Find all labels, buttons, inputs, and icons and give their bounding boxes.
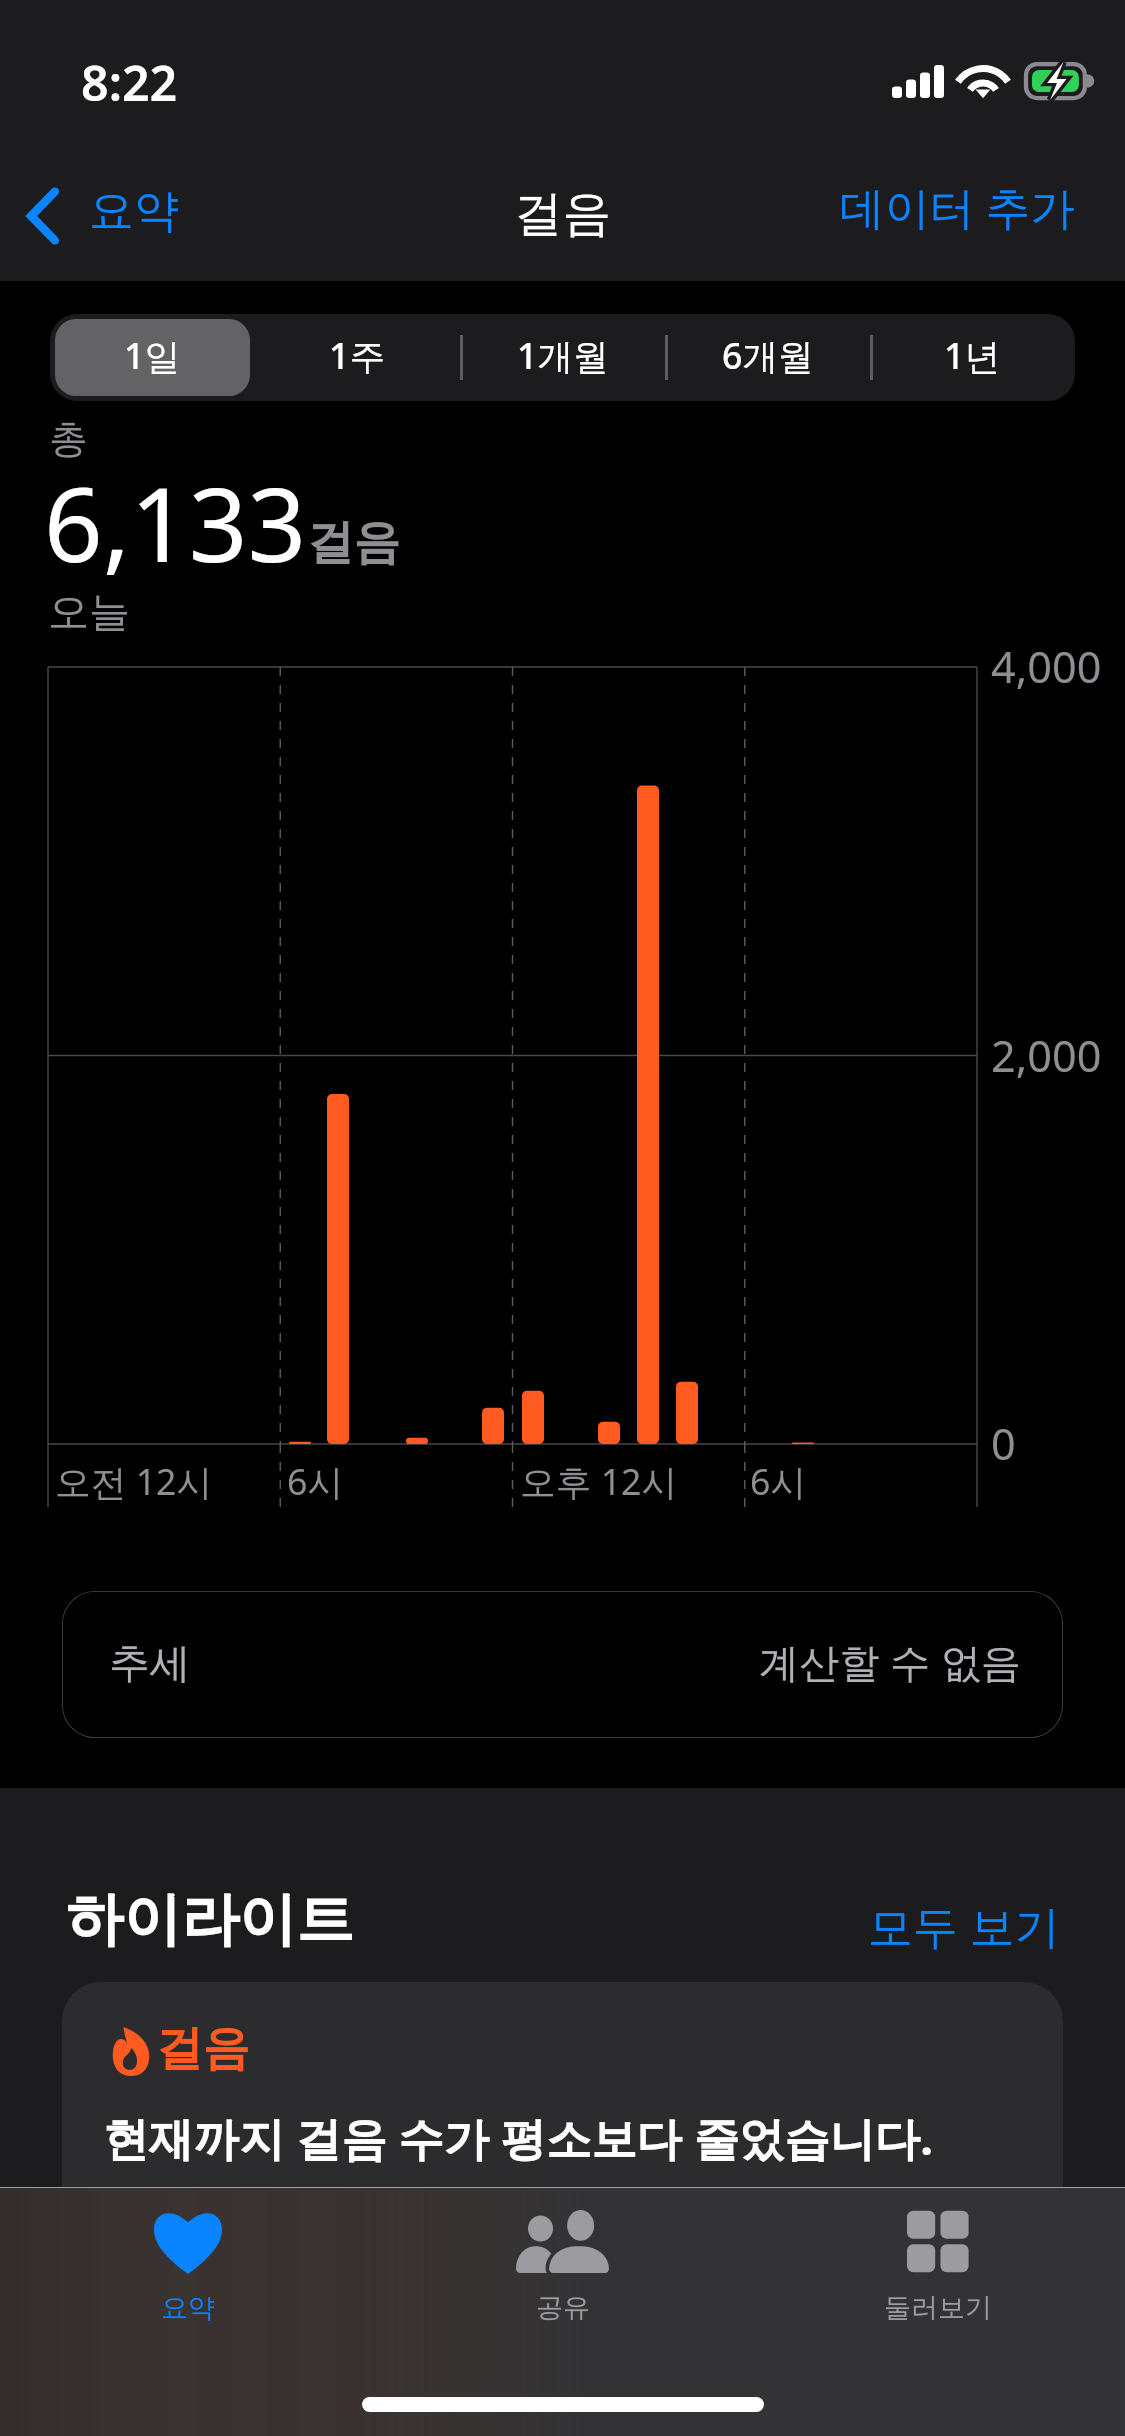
staticText: 추세 (109, 1638, 191, 1689)
staticText: 현재까지 걸음 수가 평소보다 줄었습니다. (103, 2107, 933, 2169)
staticText: 오전 12시 (55, 1457, 213, 1506)
staticText: 1개월 (517, 331, 609, 380)
button[interactable]: 1개월 (460, 314, 665, 401)
staticText: 1일 (124, 331, 181, 380)
button[interactable]: 6개월 (665, 314, 870, 401)
staticText: 1주 (329, 331, 386, 380)
staticText: 공유 (536, 2291, 590, 2325)
staticText: 하이라이트 (66, 1884, 354, 1957)
staticText: 요약 (161, 2291, 215, 2325)
staticText: 걸음 (307, 513, 400, 572)
staticText: 총 (49, 415, 88, 464)
staticText: 0 (991, 1414, 1016, 1473)
staticText: 모두 보기 (868, 1895, 1060, 1956)
staticText: 오늘 (48, 586, 131, 638)
button[interactable]: 둘러보기 (750, 2187, 1125, 2436)
staticText: 8:22 (81, 49, 178, 115)
staticText: 오후 12시 (520, 1457, 678, 1506)
staticText: 1년 (944, 331, 1001, 380)
button[interactable]: 모두 보기 (826, 1877, 1125, 1974)
button[interactable]: 추세 (62, 1591, 1063, 1738)
staticText: 4,000 (991, 637, 1102, 696)
button[interactable]: 걸음 (62, 1982, 1063, 2372)
staticText: 요약 (89, 183, 179, 240)
button[interactable]: 1년 (870, 314, 1075, 401)
staticText: 6시 (750, 1457, 807, 1506)
staticText: 데이터 추가 (840, 176, 1076, 237)
button[interactable]: Back to 요약 (0, 159, 198, 237)
staticText: 6시 (287, 1457, 344, 1506)
staticText: 둘러보기 (884, 2291, 992, 2325)
staticText: 걸음 (514, 183, 612, 244)
button[interactable]: 1주 (255, 314, 460, 401)
staticText: 6개월 (722, 331, 814, 380)
button[interactable]: 공유 (375, 2187, 750, 2436)
staticText: 2,000 (991, 1026, 1102, 1085)
button[interactable]: 데이터 추가 (804, 165, 1125, 262)
staticText: 6,133 (44, 452, 307, 592)
staticText: 계산할 수 없음 (759, 1634, 1022, 1689)
button[interactable]: 1일 (50, 314, 255, 401)
staticText: 걸음 (156, 2019, 250, 2078)
button[interactable]: 요약 (0, 2187, 375, 2436)
